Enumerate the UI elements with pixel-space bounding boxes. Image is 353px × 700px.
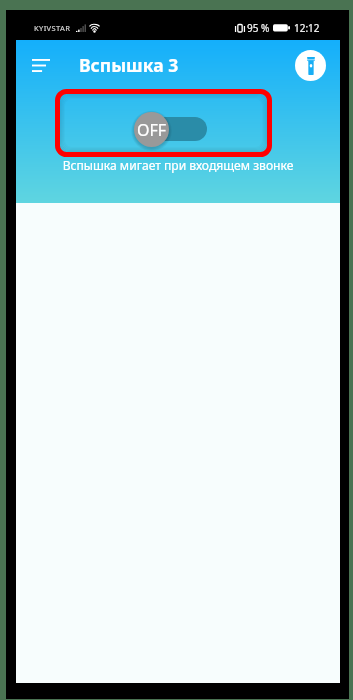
button[interactable]: Flashlight <box>295 50 326 81</box>
staticText: KYIVSTAR <box>34 23 71 33</box>
staticText: 95 % <box>247 21 270 35</box>
staticText: 12:12 <box>294 21 320 35</box>
staticText: Вспышка 3 <box>79 53 179 77</box>
staticText: Вспышка мигает при входящем звонке <box>16 157 340 173</box>
button[interactable]: Toggle flash on incoming call <box>140 111 207 147</box>
button[interactable]: Menu <box>25 49 57 81</box>
staticText: OFF <box>137 119 167 141</box>
